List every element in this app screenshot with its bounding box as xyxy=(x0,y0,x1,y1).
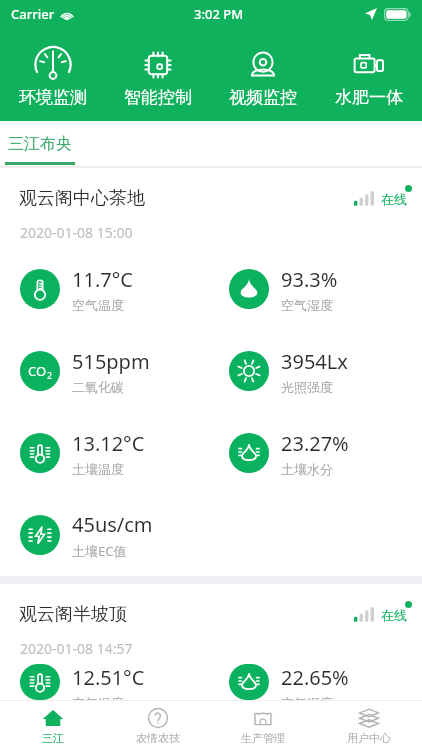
button[interactable]: 生产管理 xyxy=(210,701,316,750)
button[interactable]: 13.12°C xyxy=(20,412,209,494)
staticText: 2020-01-08 14:57 xyxy=(20,639,133,658)
staticText: 二氧化碳 xyxy=(72,379,124,395)
staticText: 土壤EC值 xyxy=(72,542,127,560)
staticText: 45us/cm xyxy=(72,511,153,538)
staticText: 3954Lx xyxy=(281,348,348,375)
staticText: Carrier xyxy=(11,5,55,23)
staticText: 13.12°C xyxy=(72,430,145,457)
staticText: 生产管理 xyxy=(241,731,285,745)
staticText: CO xyxy=(28,362,47,380)
staticText: 三江 xyxy=(42,731,64,745)
staticText: 空气温度 xyxy=(72,297,124,313)
staticText: 11.7°C xyxy=(72,266,133,293)
staticText: 12.51°C xyxy=(72,664,145,691)
button[interactable]: 11.7°C xyxy=(20,248,209,330)
staticText: 在线 xyxy=(381,191,407,207)
button[interactable]: 3954Lx xyxy=(229,330,422,412)
staticText: 观云阁中心茶地 xyxy=(19,187,145,210)
staticText: 空气温度 xyxy=(72,695,124,700)
staticText: 3:02 PM xyxy=(194,5,244,23)
staticText: 93.3% xyxy=(281,266,338,293)
staticText: 23.27% xyxy=(281,430,349,457)
button[interactable]: CO xyxy=(20,330,209,412)
staticText: 2020-01-08 15:00 xyxy=(20,223,133,242)
staticText: 515ppm xyxy=(72,348,150,375)
staticText: 农情农技 xyxy=(136,731,180,745)
staticText: 水肥一体 xyxy=(335,87,403,108)
staticText: 22.65% xyxy=(281,664,349,691)
button[interactable]: 农情农技 xyxy=(105,701,210,750)
staticText: 光照强度 xyxy=(281,379,333,395)
staticText: 土壤温度 xyxy=(72,461,124,477)
staticText: 2 xyxy=(47,369,53,381)
button[interactable]: 三江 xyxy=(0,701,105,750)
staticText: 用户中心 xyxy=(347,731,391,745)
staticText: 土壤水分 xyxy=(281,461,333,477)
button[interactable]: 三江布央 xyxy=(5,121,75,165)
button[interactable]: 水肥一体 xyxy=(316,45,422,108)
button[interactable]: 93.3% xyxy=(229,248,422,330)
button[interactable]: 23.27% xyxy=(229,412,422,494)
staticText: 视频监控 xyxy=(229,87,297,108)
staticText: 智能控制 xyxy=(124,87,192,108)
staticText: 空气湿度 xyxy=(281,695,333,700)
button[interactable]: 智能控制 xyxy=(105,45,210,108)
staticText: 环境监测 xyxy=(19,87,87,108)
staticText: 三江布央 xyxy=(8,134,72,154)
button[interactable]: 用户中心 xyxy=(316,701,422,750)
button[interactable]: 22.65% xyxy=(229,664,422,700)
staticText: 观云阁半坡顶 xyxy=(19,603,127,626)
button[interactable]: 视频监控 xyxy=(210,45,316,108)
button[interactable]: 45us/cm xyxy=(20,494,209,576)
button[interactable]: 12.51°C xyxy=(20,664,209,700)
staticText: 在线 xyxy=(381,607,407,623)
button[interactable]: 环境监测 xyxy=(0,45,105,108)
staticText: 空气湿度 xyxy=(281,297,333,313)
